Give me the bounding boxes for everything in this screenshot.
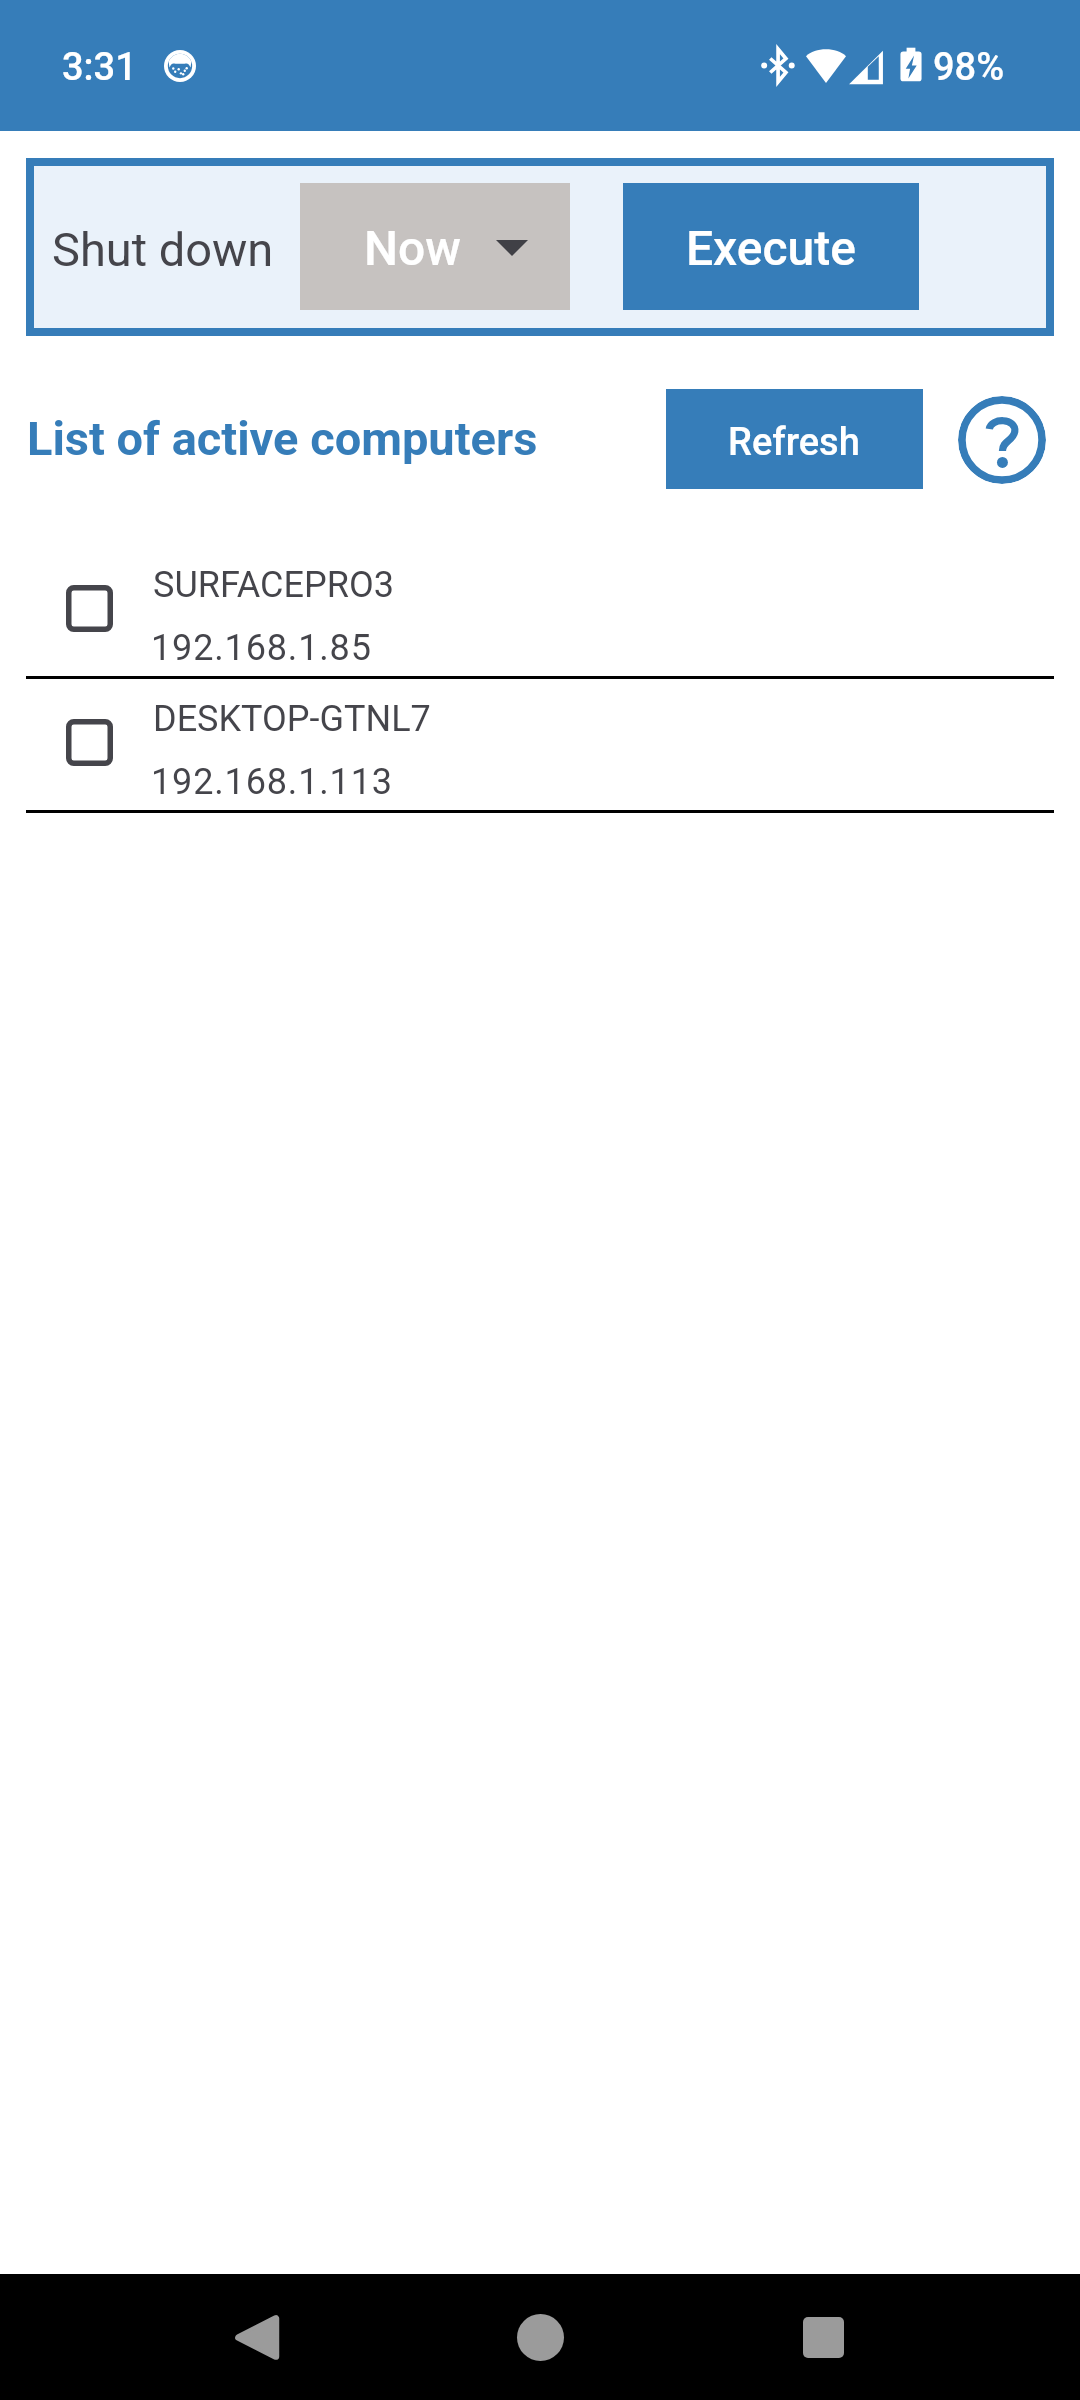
staticText: 3:31: [62, 45, 137, 90]
staticText: DESKTOP-GTNL7: [153, 698, 431, 740]
staticText: Refresh: [728, 420, 860, 465]
staticText: Shut down: [52, 222, 274, 277]
staticText: List of active computers: [27, 411, 538, 466]
button[interactable]: Back: [177, 2274, 337, 2400]
button[interactable]: DESKTOP-GTNL7: [0, 678, 1080, 812]
button[interactable]: Refresh: [666, 389, 923, 489]
button[interactable]: SURFACEPRO3: [0, 544, 1080, 678]
button[interactable]: Help: [958, 396, 1046, 484]
staticText: 192.168.1.85: [151, 627, 372, 669]
staticText: Execute: [686, 220, 856, 276]
button[interactable]: Home: [460, 2274, 620, 2400]
button[interactable]: Recent apps: [743, 2274, 903, 2400]
button[interactable]: Execute: [623, 183, 919, 310]
button[interactable]: Now: [300, 183, 570, 310]
staticText: SURFACEPRO3: [153, 564, 394, 606]
staticText: Now: [364, 220, 461, 276]
staticText: 98%: [933, 45, 1005, 90]
staticText: 192.168.1.113: [151, 761, 393, 803]
